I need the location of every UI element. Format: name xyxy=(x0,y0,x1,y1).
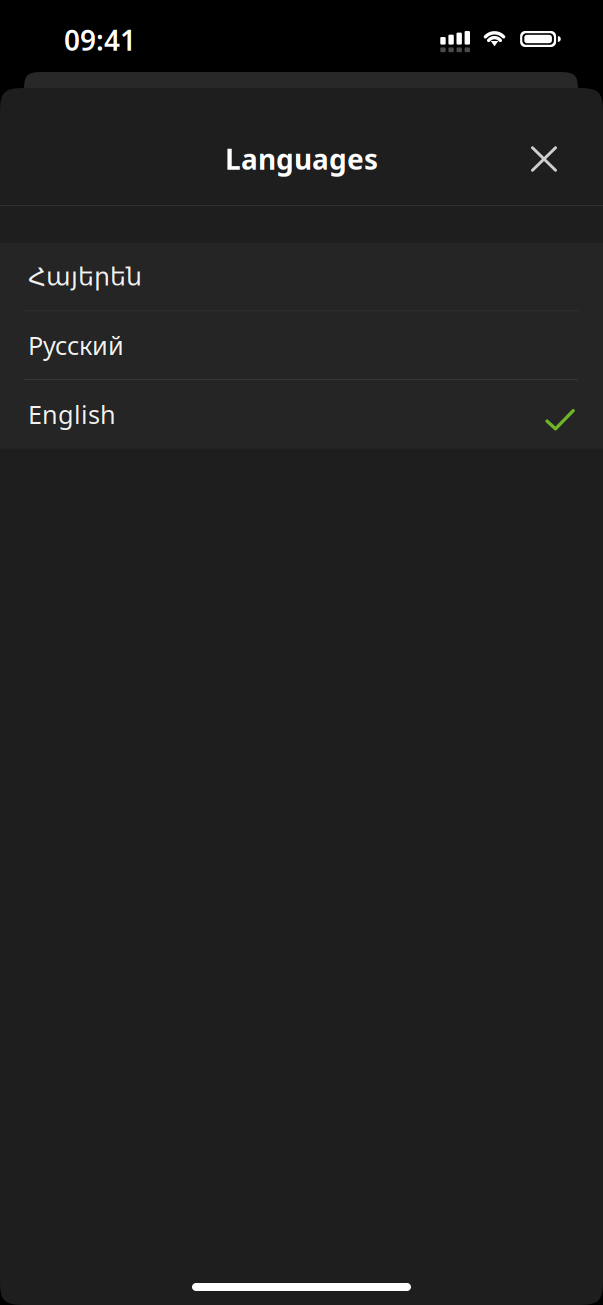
button[interactable]: Русский xyxy=(0,311,603,380)
staticText: 09:41 xyxy=(64,21,136,59)
button[interactable]: Հայերեն xyxy=(0,243,603,311)
button[interactable]: Close xyxy=(521,136,567,182)
button[interactable]: English xyxy=(0,380,603,448)
staticText: Հայերեն xyxy=(28,262,142,291)
staticText: Languages xyxy=(225,140,378,178)
staticText: Русский xyxy=(28,328,124,362)
staticText: English xyxy=(28,397,116,431)
